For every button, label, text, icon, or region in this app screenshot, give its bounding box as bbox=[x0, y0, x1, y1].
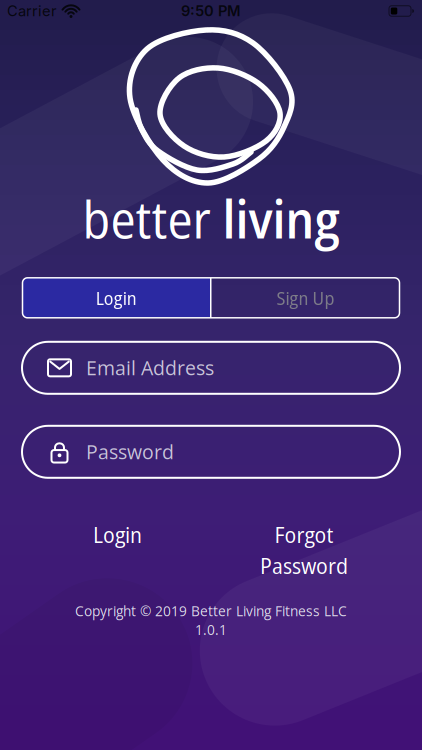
staticText: Copyright © 2019 Better Living Fitness L… bbox=[75, 602, 347, 620]
button[interactable]: Sign Up bbox=[211, 278, 399, 318]
button[interactable]: Login bbox=[22, 278, 210, 318]
staticText: Forgot bbox=[274, 519, 333, 550]
staticText: 1.0.1 bbox=[195, 620, 227, 639]
staticText: Carrier bbox=[7, 2, 57, 20]
staticText: Password bbox=[86, 439, 174, 465]
staticText: Sign Up bbox=[276, 285, 334, 310]
staticText: Password bbox=[260, 550, 348, 581]
staticText: Email Address bbox=[86, 355, 214, 381]
staticText: living bbox=[222, 183, 339, 254]
button[interactable]: Forgot bbox=[260, 519, 348, 580]
staticText: Login bbox=[96, 285, 137, 310]
staticText: 9:50 PM bbox=[181, 2, 241, 20]
staticText: Login bbox=[93, 519, 142, 550]
button[interactable]: Password bbox=[22, 426, 400, 478]
button[interactable]: Email Address bbox=[22, 342, 400, 394]
staticText: better bbox=[82, 183, 222, 254]
button[interactable]: Login bbox=[93, 519, 142, 550]
